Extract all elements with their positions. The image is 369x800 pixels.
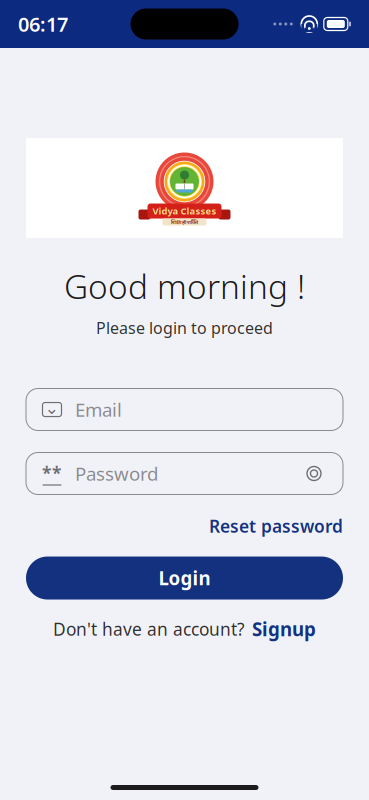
button[interactable]: Show password [301,460,327,486]
button[interactable]: Reset password [199,509,343,542]
button[interactable]: Signup [252,612,316,645]
staticText: ⌄ [44,398,59,418]
button[interactable]: Login [26,556,343,599]
staticText: Vidya Classes [152,205,216,217]
staticText: * [42,461,51,484]
staticText: Email [75,397,122,422]
staticText: Reset password [209,514,343,537]
staticText: * [52,461,61,484]
staticText: शिक्षा ही शक्ति [171,218,198,226]
staticText: Please login to proceed [96,317,273,338]
staticText: Don't have an account? [53,617,245,640]
staticText: 06:17 [18,11,68,37]
staticText: Good morning ! [64,264,305,308]
staticText: Signup [252,616,316,641]
staticText: Password [75,461,158,486]
staticText: Login [158,566,210,590]
button[interactable]: ⌄ [26,388,343,430]
